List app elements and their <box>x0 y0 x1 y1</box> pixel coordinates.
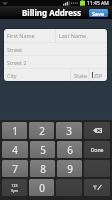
button[interactable]: 5 <box>30 141 55 158</box>
staticText: Save <box>92 10 105 17</box>
staticText: 123 Sym <box>11 183 18 193</box>
button[interactable]: Backspace <box>84 122 110 139</box>
staticText: State <box>74 72 87 79</box>
staticText: 0 <box>39 181 45 195</box>
button[interactable]: ZIP <box>89 69 107 81</box>
staticText: First Name <box>7 32 35 39</box>
button[interactable]: 0 <box>29 179 54 196</box>
staticText: 1 <box>12 124 18 138</box>
button[interactable]: Handwriting input <box>84 179 110 196</box>
staticText: Done <box>90 146 104 153</box>
button[interactable]: 123 Sym <box>2 179 27 196</box>
staticText: 3 <box>66 124 72 138</box>
button[interactable]: 3 <box>56 122 82 139</box>
staticText: 7 <box>12 162 18 176</box>
staticText: 6 <box>67 143 73 157</box>
button[interactable]: First Name <box>4 29 55 42</box>
button[interactable]: Save <box>89 9 108 17</box>
button[interactable]: 1 <box>2 122 27 139</box>
staticText: ZIP <box>94 72 103 79</box>
button[interactable]: Last Name <box>56 29 107 42</box>
staticText: Street <box>7 46 23 53</box>
button[interactable]: 2 <box>29 122 54 139</box>
button[interactable]: 4 <box>2 141 28 158</box>
staticText: Billing Address <box>22 7 82 18</box>
staticText: 11:45 AM <box>87 0 109 6</box>
button[interactable]: Street <box>4 43 107 55</box>
button[interactable]: 7 <box>2 160 28 177</box>
staticText: Street 2 <box>7 59 27 66</box>
button[interactable]: City <box>4 69 70 81</box>
button[interactable]: 6 <box>57 141 82 158</box>
staticText: 4 <box>12 143 18 157</box>
button[interactable]: 9 <box>57 160 82 177</box>
button[interactable]: Done <box>84 141 110 158</box>
staticText: 9 <box>67 162 73 176</box>
staticText: 2 <box>39 124 45 138</box>
staticText: 8 <box>40 162 46 176</box>
staticText: City <box>7 72 17 79</box>
button[interactable]: 8 <box>30 160 55 177</box>
staticText: Last Name <box>59 32 86 39</box>
button[interactable]: State <box>71 69 88 81</box>
staticText: 5 <box>40 143 46 157</box>
button[interactable]: Street 2 <box>4 56 107 68</box>
